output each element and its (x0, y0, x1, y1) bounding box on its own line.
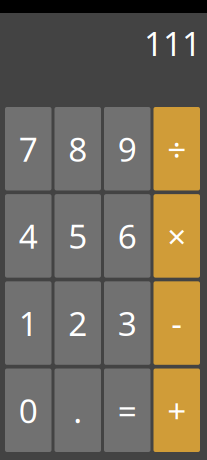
button[interactable]: 8 (54, 107, 101, 190)
staticText: 0 (19, 388, 38, 432)
staticText: - (171, 301, 182, 345)
staticText: ÷ (167, 127, 186, 171)
staticText: + (167, 388, 186, 432)
staticText: 8 (68, 127, 87, 171)
staticText: 4 (19, 214, 38, 258)
staticText: 5 (68, 214, 87, 258)
staticText: 111 (144, 21, 201, 65)
staticText: = (118, 388, 137, 432)
button[interactable]: Divide (153, 107, 200, 190)
staticText: . (73, 388, 82, 432)
staticText: 3 (118, 301, 137, 345)
button[interactable]: 7 (5, 107, 51, 190)
staticText: × (167, 214, 186, 258)
button[interactable]: 3 (104, 281, 150, 365)
button[interactable]: = (104, 368, 150, 452)
button[interactable]: 4 (5, 194, 51, 278)
button[interactable]: 9 (104, 107, 150, 190)
button[interactable]: Subtract (153, 281, 200, 365)
button[interactable]: 6 (104, 194, 150, 278)
staticText: 7 (19, 127, 38, 171)
button[interactable]: 1 (5, 281, 51, 365)
staticText: 9 (118, 127, 137, 171)
button[interactable]: . (54, 368, 101, 452)
staticText: 2 (68, 301, 87, 345)
button[interactable]: Multiply (153, 194, 200, 278)
staticText: 6 (118, 214, 137, 258)
button[interactable]: Add (153, 368, 200, 452)
staticText: 1 (19, 301, 38, 345)
button[interactable]: 5 (54, 194, 101, 278)
button[interactable]: 2 (54, 281, 101, 365)
button[interactable]: 0 (5, 368, 51, 452)
